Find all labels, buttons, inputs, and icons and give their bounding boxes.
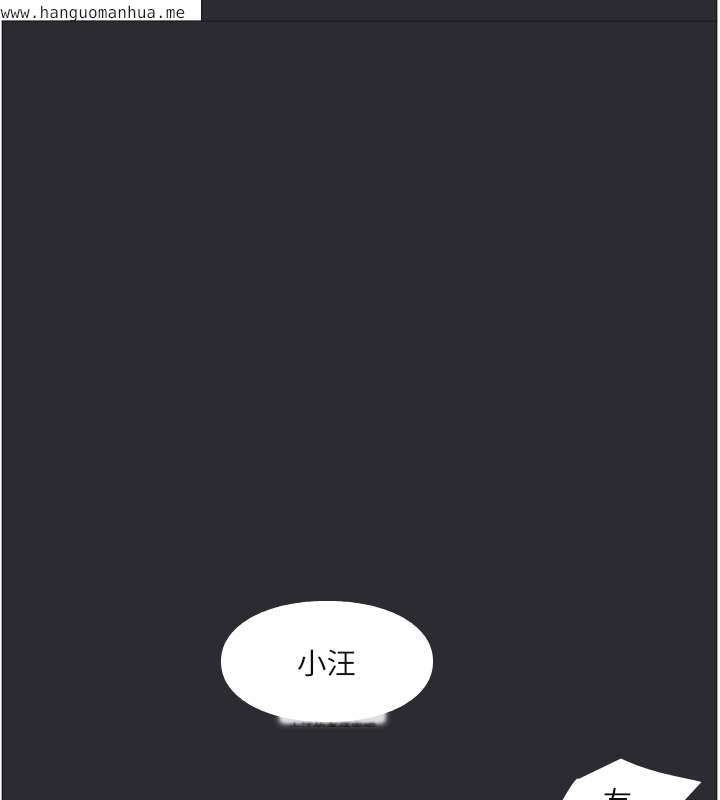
- button[interactable]: Comic page, tap to continue: [0, 0, 720, 800]
